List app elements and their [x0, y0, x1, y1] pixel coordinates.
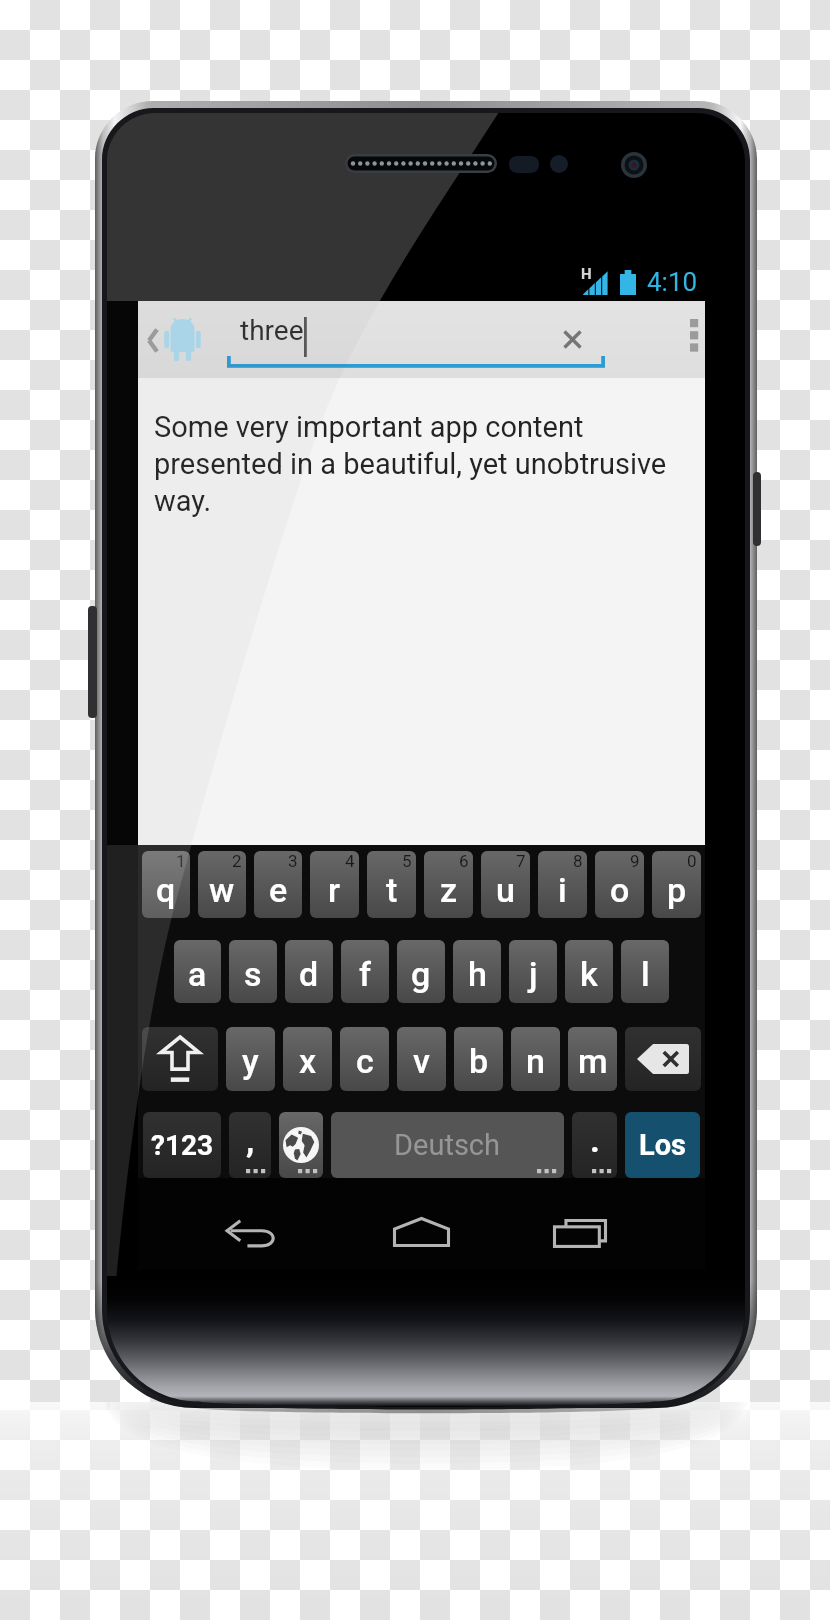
staticText: a: [188, 954, 207, 994]
staticText: u: [496, 870, 515, 910]
staticText: i: [558, 870, 567, 910]
staticText: s: [244, 954, 262, 994]
staticText: e: [269, 870, 288, 910]
button[interactable]: a: [174, 940, 221, 1003]
button[interactable]: n: [511, 1027, 560, 1091]
button[interactable]: j: [509, 940, 557, 1003]
staticText: 4:10: [647, 267, 698, 297]
staticText: Los: [639, 1128, 686, 1162]
button[interactable]: g: [397, 940, 445, 1003]
staticText: Some very important app content presente…: [154, 410, 701, 518]
staticText: v: [413, 1041, 430, 1081]
button[interactable]: i: [538, 851, 587, 918]
staticText: l: [641, 954, 650, 994]
staticText: g: [411, 954, 431, 994]
button[interactable]: Backspace: [625, 1027, 701, 1091]
staticText: p: [667, 870, 687, 910]
staticText: y: [242, 1041, 259, 1081]
staticText: 1: [176, 851, 186, 871]
button[interactable]: d: [285, 940, 333, 1003]
staticText: 7: [516, 851, 526, 871]
button[interactable]: f: [341, 940, 389, 1003]
staticText: f: [359, 954, 372, 994]
button[interactable]: Shift: [142, 1027, 218, 1091]
staticText: 8: [573, 851, 583, 871]
staticText: z: [440, 870, 458, 910]
staticText: o: [610, 870, 630, 910]
button[interactable]: b: [454, 1027, 503, 1091]
button[interactable]: u: [481, 851, 530, 918]
button[interactable]: q: [142, 851, 190, 918]
staticText: w: [209, 870, 235, 910]
button[interactable]: Los: [625, 1112, 700, 1178]
button[interactable]: r: [310, 851, 359, 918]
button[interactable]: h: [453, 940, 501, 1003]
button[interactable]: k: [565, 940, 613, 1003]
staticText: 2: [232, 851, 242, 871]
staticText: x: [299, 1041, 317, 1081]
button[interactable]: v: [397, 1027, 446, 1091]
button[interactable]: c: [340, 1027, 389, 1091]
button[interactable]: Change keyboard language: [279, 1112, 323, 1178]
staticText: 6: [459, 851, 469, 871]
staticText: 3: [288, 851, 298, 871]
staticText: b: [469, 1041, 489, 1081]
button[interactable]: More options: [628, 301, 705, 378]
staticText: n: [526, 1041, 545, 1081]
button[interactable]: z: [424, 851, 473, 918]
button[interactable]: Clear text: [536, 304, 608, 375]
button[interactable]: m: [568, 1027, 617, 1091]
button[interactable]: .: [572, 1112, 617, 1178]
button[interactable]: Back: [212, 1197, 290, 1269]
button[interactable]: l: [621, 940, 669, 1003]
button[interactable]: t: [367, 851, 416, 918]
staticText: 5: [402, 851, 412, 871]
button[interactable]: Deutsch: [331, 1112, 564, 1178]
staticText: h: [468, 954, 487, 994]
staticText: j: [529, 954, 538, 994]
staticText: ,: [246, 1120, 255, 1160]
staticText: 9: [630, 851, 640, 871]
staticText: q: [156, 870, 176, 910]
staticText: 4: [345, 851, 355, 871]
button[interactable]: ,: [229, 1112, 271, 1178]
button[interactable]: Recent apps: [541, 1197, 619, 1269]
staticText: Deutsch: [394, 1128, 501, 1162]
button[interactable]: e: [254, 851, 302, 918]
button[interactable]: y: [226, 1027, 275, 1091]
button[interactable]: w: [198, 851, 246, 918]
button[interactable]: Navigate up: [140, 317, 164, 363]
staticText: ?123: [151, 1129, 214, 1162]
button[interactable]: o: [595, 851, 644, 918]
staticText: k: [580, 954, 598, 994]
staticText: d: [299, 954, 319, 994]
button[interactable]: p: [652, 851, 701, 918]
staticText: H: [581, 265, 592, 283]
staticText: m: [578, 1041, 608, 1081]
button[interactable]: s: [229, 940, 277, 1003]
staticText: c: [356, 1041, 374, 1081]
staticText: t: [386, 870, 398, 910]
button[interactable]: Home: [382, 1196, 460, 1268]
button[interactable]: ?123: [143, 1112, 221, 1178]
button[interactable]: x: [283, 1027, 332, 1091]
staticText: .: [590, 1120, 600, 1160]
staticText: 0: [687, 851, 697, 871]
button[interactable]: App icon: [160, 316, 204, 364]
staticText: three: [240, 314, 304, 347]
staticText: r: [328, 870, 341, 910]
